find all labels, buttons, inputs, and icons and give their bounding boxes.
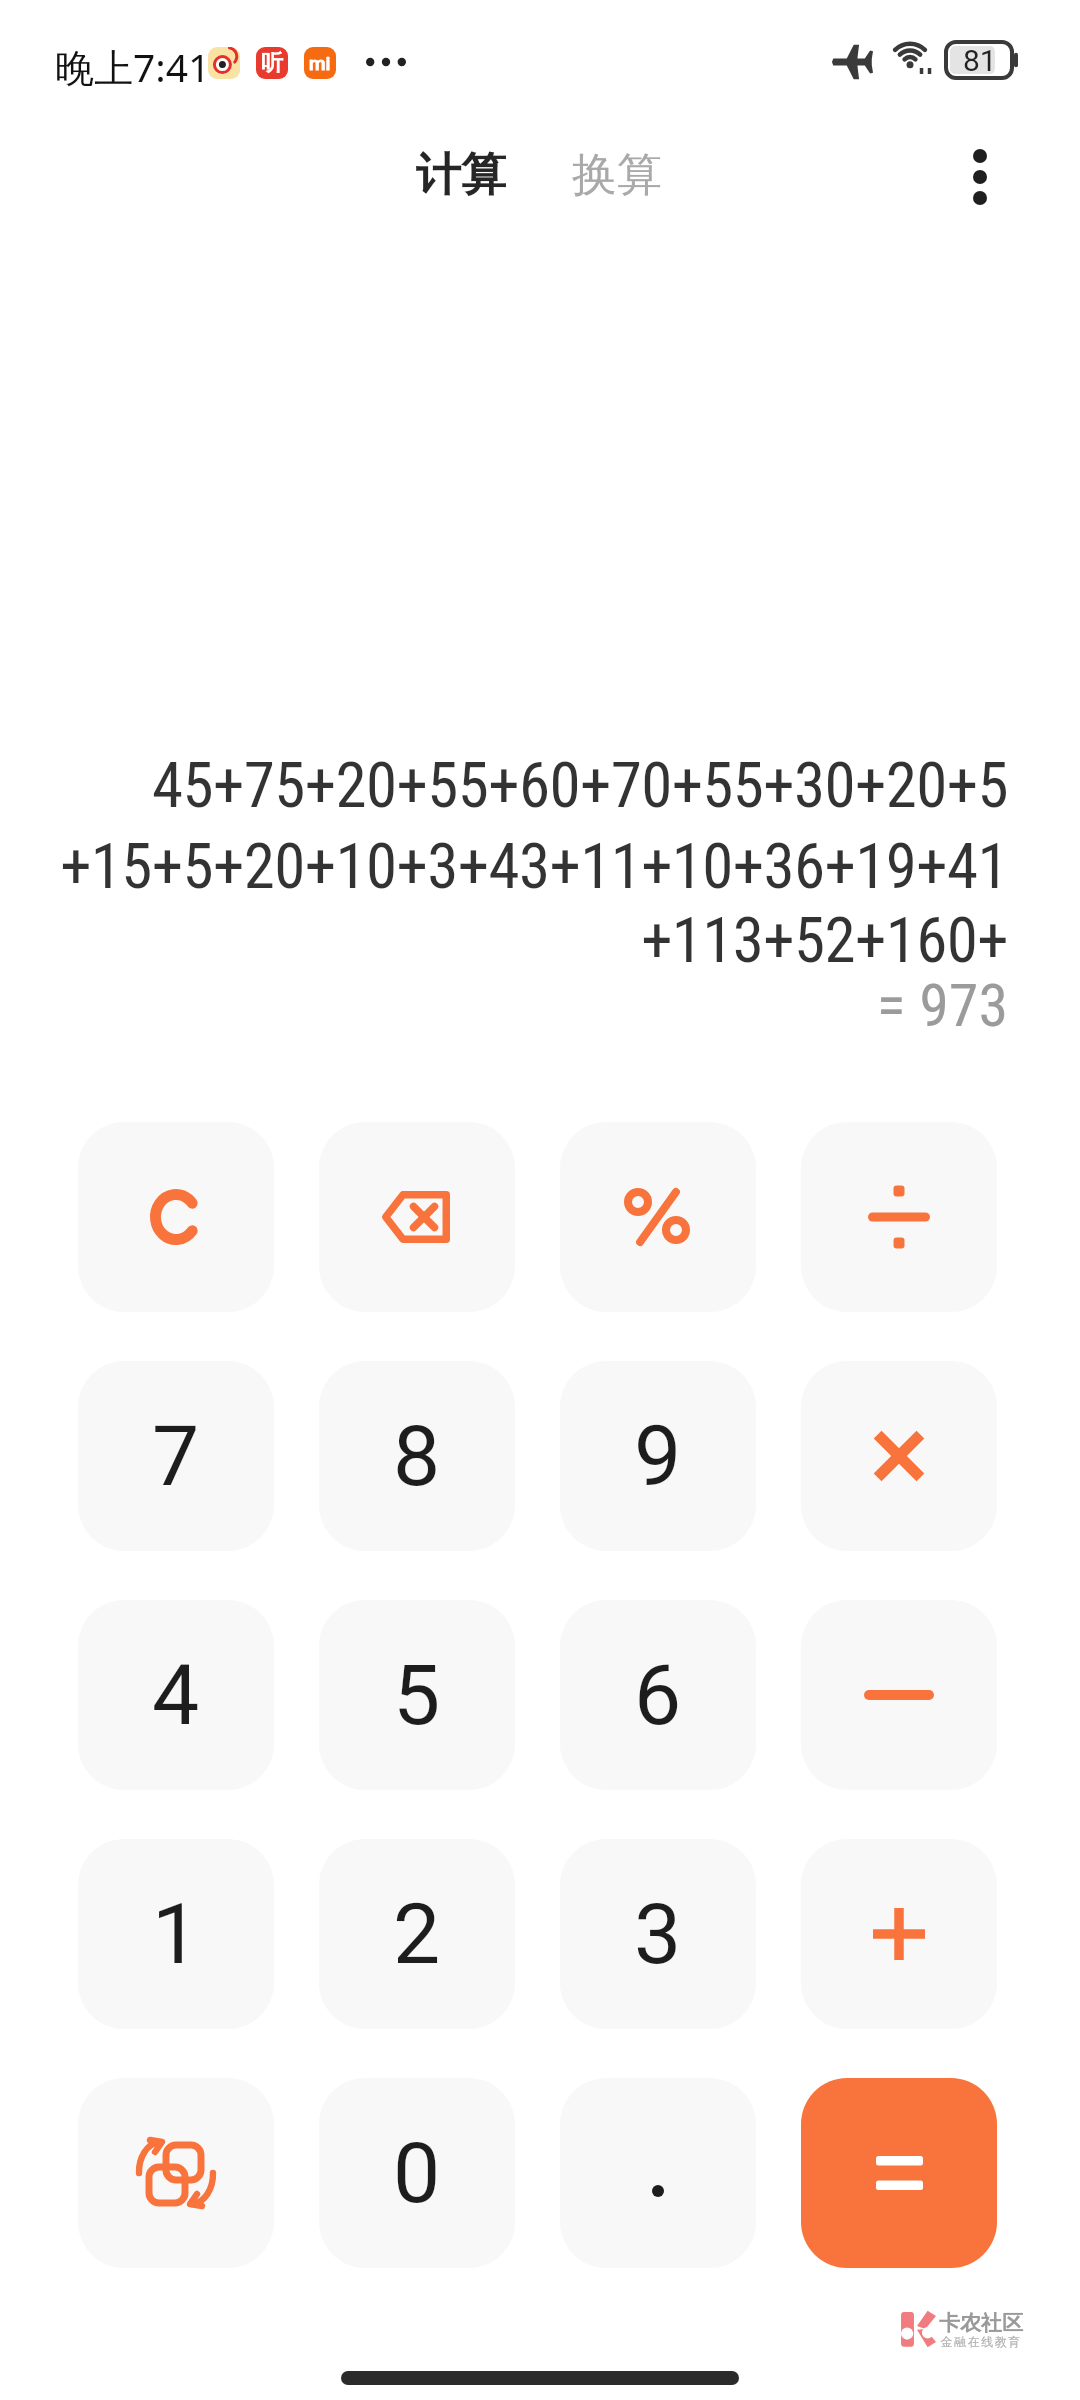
button[interactable] [560, 2078, 756, 2268]
button[interactable] [319, 1122, 515, 1312]
staticText: 计算 [416, 147, 506, 204]
staticText: 晚上7:41 [55, 40, 211, 93]
staticText: 4 [152, 1646, 200, 1744]
staticText: 2 [393, 1885, 441, 1983]
button[interactable]: 4 [78, 1600, 274, 1790]
staticText: 7 [152, 1407, 200, 1505]
staticText: 0 [393, 2124, 441, 2222]
button[interactable]: 3 [560, 1839, 756, 2029]
button[interactable]: 6 [560, 1600, 756, 1790]
button[interactable] [78, 2078, 274, 2268]
button[interactable] [801, 1122, 997, 1312]
staticText: 1 [152, 1885, 200, 1983]
button[interactable]: 0 [319, 2078, 515, 2268]
button[interactable]: 7 [78, 1361, 274, 1551]
button[interactable] [78, 1122, 274, 1312]
button[interactable]: 换算 [572, 147, 662, 204]
staticText: 换算 [572, 147, 662, 204]
staticText: mi [309, 52, 331, 74]
button[interactable] [952, 137, 1008, 217]
staticText: 3 [634, 1885, 682, 1983]
button[interactable]: 9 [560, 1361, 756, 1551]
staticText: 听 [261, 49, 283, 77]
button[interactable] [560, 1122, 756, 1312]
staticText: 6 [634, 1646, 682, 1744]
button[interactable] [801, 1839, 997, 2029]
staticText: 金融在线教育 [940, 2334, 1021, 2349]
button[interactable] [801, 1361, 997, 1551]
button[interactable]: 8 [319, 1361, 515, 1551]
staticText: 5 [393, 1646, 441, 1744]
staticText: 81 [963, 43, 997, 78]
staticText: +113+52+160+ [0, 904, 1008, 978]
button[interactable]: 2 [319, 1839, 515, 2029]
staticText: 8 [393, 1407, 441, 1505]
staticText: = 973 [0, 970, 1008, 1040]
staticText: 卡农社区 [939, 2310, 1023, 2336]
button[interactable]: 1 [78, 1839, 274, 2029]
staticText: +15+5+20+10+3+43+11+10+36+19+41 [0, 830, 1008, 904]
button[interactable] [801, 2078, 997, 2268]
button[interactable] [801, 1600, 997, 1790]
staticText: 9 [634, 1407, 682, 1505]
staticText: 45+75+20+55+60+70+55+30+20+5 [0, 749, 1008, 823]
button[interactable]: 5 [319, 1600, 515, 1790]
button[interactable]: 计算 [416, 147, 506, 204]
